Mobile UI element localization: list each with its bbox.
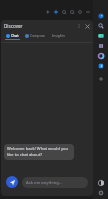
staticText: Welcome back! What would you like to cha… bbox=[7, 146, 71, 158]
button[interactable]: Terminal bbox=[96, 31, 106, 41]
button[interactable]: Search bbox=[96, 21, 106, 31]
button[interactable]: Compose bbox=[22, 33, 49, 39]
button[interactable]: Run bbox=[44, 8, 52, 16]
button[interactable]: AI Assistant bbox=[6, 176, 18, 188]
button[interactable]: Settings bbox=[96, 51, 106, 61]
button[interactable]: Ask me anything... bbox=[22, 177, 88, 188]
staticText: Ask me anything... bbox=[26, 180, 63, 186]
button[interactable]: Chat bbox=[3, 33, 22, 40]
button[interactable]: Plugins bbox=[96, 61, 106, 71]
button[interactable]: AI Assistant bbox=[96, 11, 106, 21]
button[interactable]: Add bbox=[96, 74, 106, 84]
staticText: Chat bbox=[11, 33, 19, 38]
button[interactable]: Notifications bbox=[76, 8, 84, 16]
staticText: Insights bbox=[52, 33, 65, 38]
button[interactable]: Close bbox=[83, 22, 91, 30]
button[interactable]: Options bbox=[75, 22, 83, 30]
button[interactable]: Search everywhere bbox=[60, 8, 68, 16]
staticText: Discover bbox=[4, 23, 23, 29]
button[interactable]: Insights bbox=[49, 33, 68, 39]
button[interactable]: Notifications bbox=[96, 41, 106, 51]
button[interactable]: Minimize bbox=[84, 8, 92, 16]
button[interactable]: Settings bbox=[96, 188, 106, 198]
button[interactable]: Layout bbox=[96, 178, 106, 188]
staticText: Compose bbox=[30, 33, 46, 38]
button[interactable]: Settings bbox=[68, 8, 76, 16]
button[interactable]: AI Assistant bbox=[52, 8, 60, 16]
